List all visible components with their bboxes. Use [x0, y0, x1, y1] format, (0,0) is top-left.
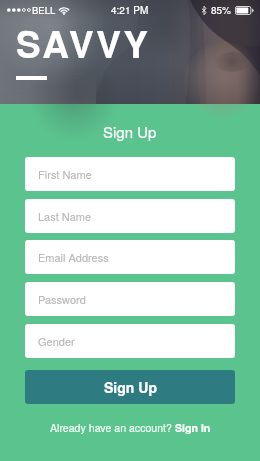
other: Bluetooth — [201, 6, 207, 15]
staticText: Sign In — [175, 420, 211, 435]
other: Wi-Fi — [58, 6, 70, 15]
button[interactable]: Password — [25, 282, 235, 316]
staticText: Last Name — [38, 208, 92, 224]
button[interactable]: Last Name — [25, 199, 235, 233]
staticText: 85% — [211, 3, 232, 17]
staticText: Gender — [38, 333, 75, 349]
staticText: BELL — [32, 3, 56, 17]
button[interactable]: First Name — [25, 157, 235, 191]
staticText: Sign Up — [104, 377, 157, 397]
button[interactable]: Email Address — [25, 240, 235, 274]
other: Signal strength — [7, 8, 29, 12]
staticText: Sign Up — [103, 121, 157, 142]
button[interactable]: Already have an account? — [0, 418, 260, 437]
staticText: SAVVY — [16, 16, 151, 69]
button[interactable]: Sign Up — [25, 370, 235, 404]
staticText: Password — [38, 291, 86, 307]
button[interactable]: Gender — [25, 324, 235, 358]
staticText: 4:21 PM — [111, 3, 149, 17]
other: Battery 85 percent — [235, 6, 254, 15]
staticText: Already have an account? — [50, 420, 175, 435]
staticText: Email Address — [38, 249, 109, 265]
staticText: First Name — [38, 166, 92, 182]
